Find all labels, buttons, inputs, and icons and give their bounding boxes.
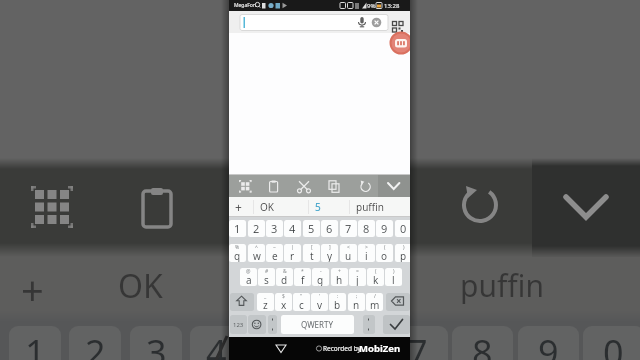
button[interactable]: 0 xyxy=(395,220,410,237)
staticText: $ xyxy=(282,293,285,300)
staticText: i xyxy=(365,249,368,262)
staticText: g xyxy=(317,273,324,286)
staticText: ~ xyxy=(273,244,276,251)
button[interactable]: " xyxy=(293,293,310,311)
staticText: | xyxy=(291,244,294,251)
button[interactable] xyxy=(230,293,254,311)
button[interactable]: 2 xyxy=(248,220,265,237)
staticText: puffin xyxy=(460,265,544,306)
button[interactable]: | xyxy=(284,244,301,262)
staticText: d xyxy=(281,273,288,286)
button[interactable] xyxy=(293,175,315,197)
staticText: r xyxy=(290,249,295,262)
button[interactable] xyxy=(248,315,266,334)
staticText: u xyxy=(345,249,352,262)
button[interactable] xyxy=(378,175,410,197)
staticText: 5 xyxy=(308,221,315,236)
button[interactable]: 5 xyxy=(311,197,325,217)
button[interactable] xyxy=(386,293,410,311)
staticText: * xyxy=(301,268,304,275)
button[interactable]: ' xyxy=(311,293,328,311)
staticText: 2 xyxy=(253,221,260,236)
button[interactable]: > xyxy=(358,244,375,262)
button[interactable]: ) xyxy=(395,244,410,262)
button[interactable]: : xyxy=(329,293,346,311)
button[interactable]: ; xyxy=(348,293,365,311)
staticText: c xyxy=(299,298,304,311)
staticText: & xyxy=(283,268,287,275)
staticText: + xyxy=(235,199,242,215)
staticText: 7 xyxy=(345,221,352,236)
button[interactable]: < xyxy=(340,244,357,262)
staticText: 2 xyxy=(85,328,106,360)
button[interactable] xyxy=(263,175,285,197)
button[interactable]: [ xyxy=(303,244,320,262)
staticText: = xyxy=(356,268,359,275)
button[interactable]: ^ xyxy=(248,244,265,262)
button[interactable]: - xyxy=(312,268,329,286)
staticText: n xyxy=(353,298,360,311)
staticText: ' xyxy=(319,293,321,300)
button[interactable]: 9 xyxy=(376,220,393,237)
button[interactable]: OK xyxy=(256,197,278,217)
staticText: < xyxy=(347,244,350,251)
button[interactable] xyxy=(363,315,375,334)
button[interactable]: * xyxy=(294,268,311,286)
staticText: ; xyxy=(356,293,358,300)
button[interactable] xyxy=(355,15,369,30)
staticText: f xyxy=(301,273,305,286)
button[interactable]: 6 xyxy=(321,220,338,237)
button[interactable] xyxy=(355,175,377,197)
button[interactable]: QWERTY xyxy=(281,315,354,334)
button[interactable]: 123 xyxy=(230,315,247,334)
button[interactable]: ( xyxy=(367,268,384,286)
staticText: + xyxy=(21,262,44,307)
staticText: " xyxy=(300,293,303,300)
staticText: 8 xyxy=(363,221,370,236)
button[interactable]: 8 xyxy=(358,220,375,237)
staticText: + xyxy=(338,268,341,275)
button[interactable] xyxy=(391,20,405,34)
staticText: 3 xyxy=(271,221,278,236)
staticText: 1 xyxy=(234,221,241,236)
staticText: x xyxy=(281,298,287,311)
staticText: [ xyxy=(311,244,313,251)
button[interactable]: _ xyxy=(257,293,274,311)
staticText: j xyxy=(356,273,359,286)
button[interactable]: = xyxy=(349,268,366,286)
staticText: 3 xyxy=(146,328,167,360)
button[interactable]: + xyxy=(331,268,348,286)
button[interactable] xyxy=(271,340,291,357)
staticText: > xyxy=(365,244,368,251)
button[interactable]: 4 xyxy=(284,220,301,237)
staticText: MobiZen xyxy=(359,342,401,355)
button[interactable]: & xyxy=(276,268,293,286)
staticText: 9% xyxy=(367,2,376,10)
button[interactable]: puffin xyxy=(355,197,385,217)
button[interactable] xyxy=(235,175,257,197)
button[interactable] xyxy=(383,315,410,334)
button[interactable]: 5 xyxy=(303,220,320,237)
button[interactable]: ~ xyxy=(266,244,283,262)
button[interactable]: ] xyxy=(321,244,338,262)
button[interactable]: 3 xyxy=(266,220,283,237)
button[interactable]: $ xyxy=(275,293,292,311)
button[interactable] xyxy=(240,15,388,31)
button[interactable] xyxy=(390,32,410,54)
button[interactable] xyxy=(370,15,383,30)
staticText: b xyxy=(334,298,341,311)
button[interactable]: ( xyxy=(376,244,393,262)
button[interactable]: % xyxy=(229,244,246,262)
button[interactable] xyxy=(323,175,345,197)
staticText: _ xyxy=(264,293,267,300)
button[interactable]: # xyxy=(258,268,275,286)
staticText: puffin xyxy=(356,200,384,214)
staticText: : xyxy=(337,293,339,300)
button[interactable]: / xyxy=(366,293,383,311)
button[interactable]: 7 xyxy=(340,220,357,237)
button[interactable]: ) xyxy=(385,268,402,286)
button[interactable]: @ xyxy=(240,268,257,286)
staticText: OK xyxy=(118,264,163,306)
button[interactable] xyxy=(268,315,277,334)
button[interactable]: 1 xyxy=(229,220,246,237)
